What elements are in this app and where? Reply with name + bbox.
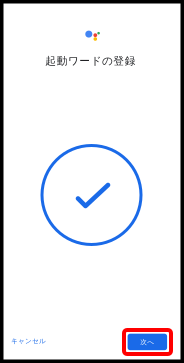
button[interactable]: キャンセル <box>5 330 51 352</box>
staticText: キャンセル <box>11 337 46 345</box>
staticText: 次へ <box>140 338 154 346</box>
staticText: 起動ワードの登録 <box>45 54 136 68</box>
button[interactable]: 次へ <box>122 328 173 356</box>
